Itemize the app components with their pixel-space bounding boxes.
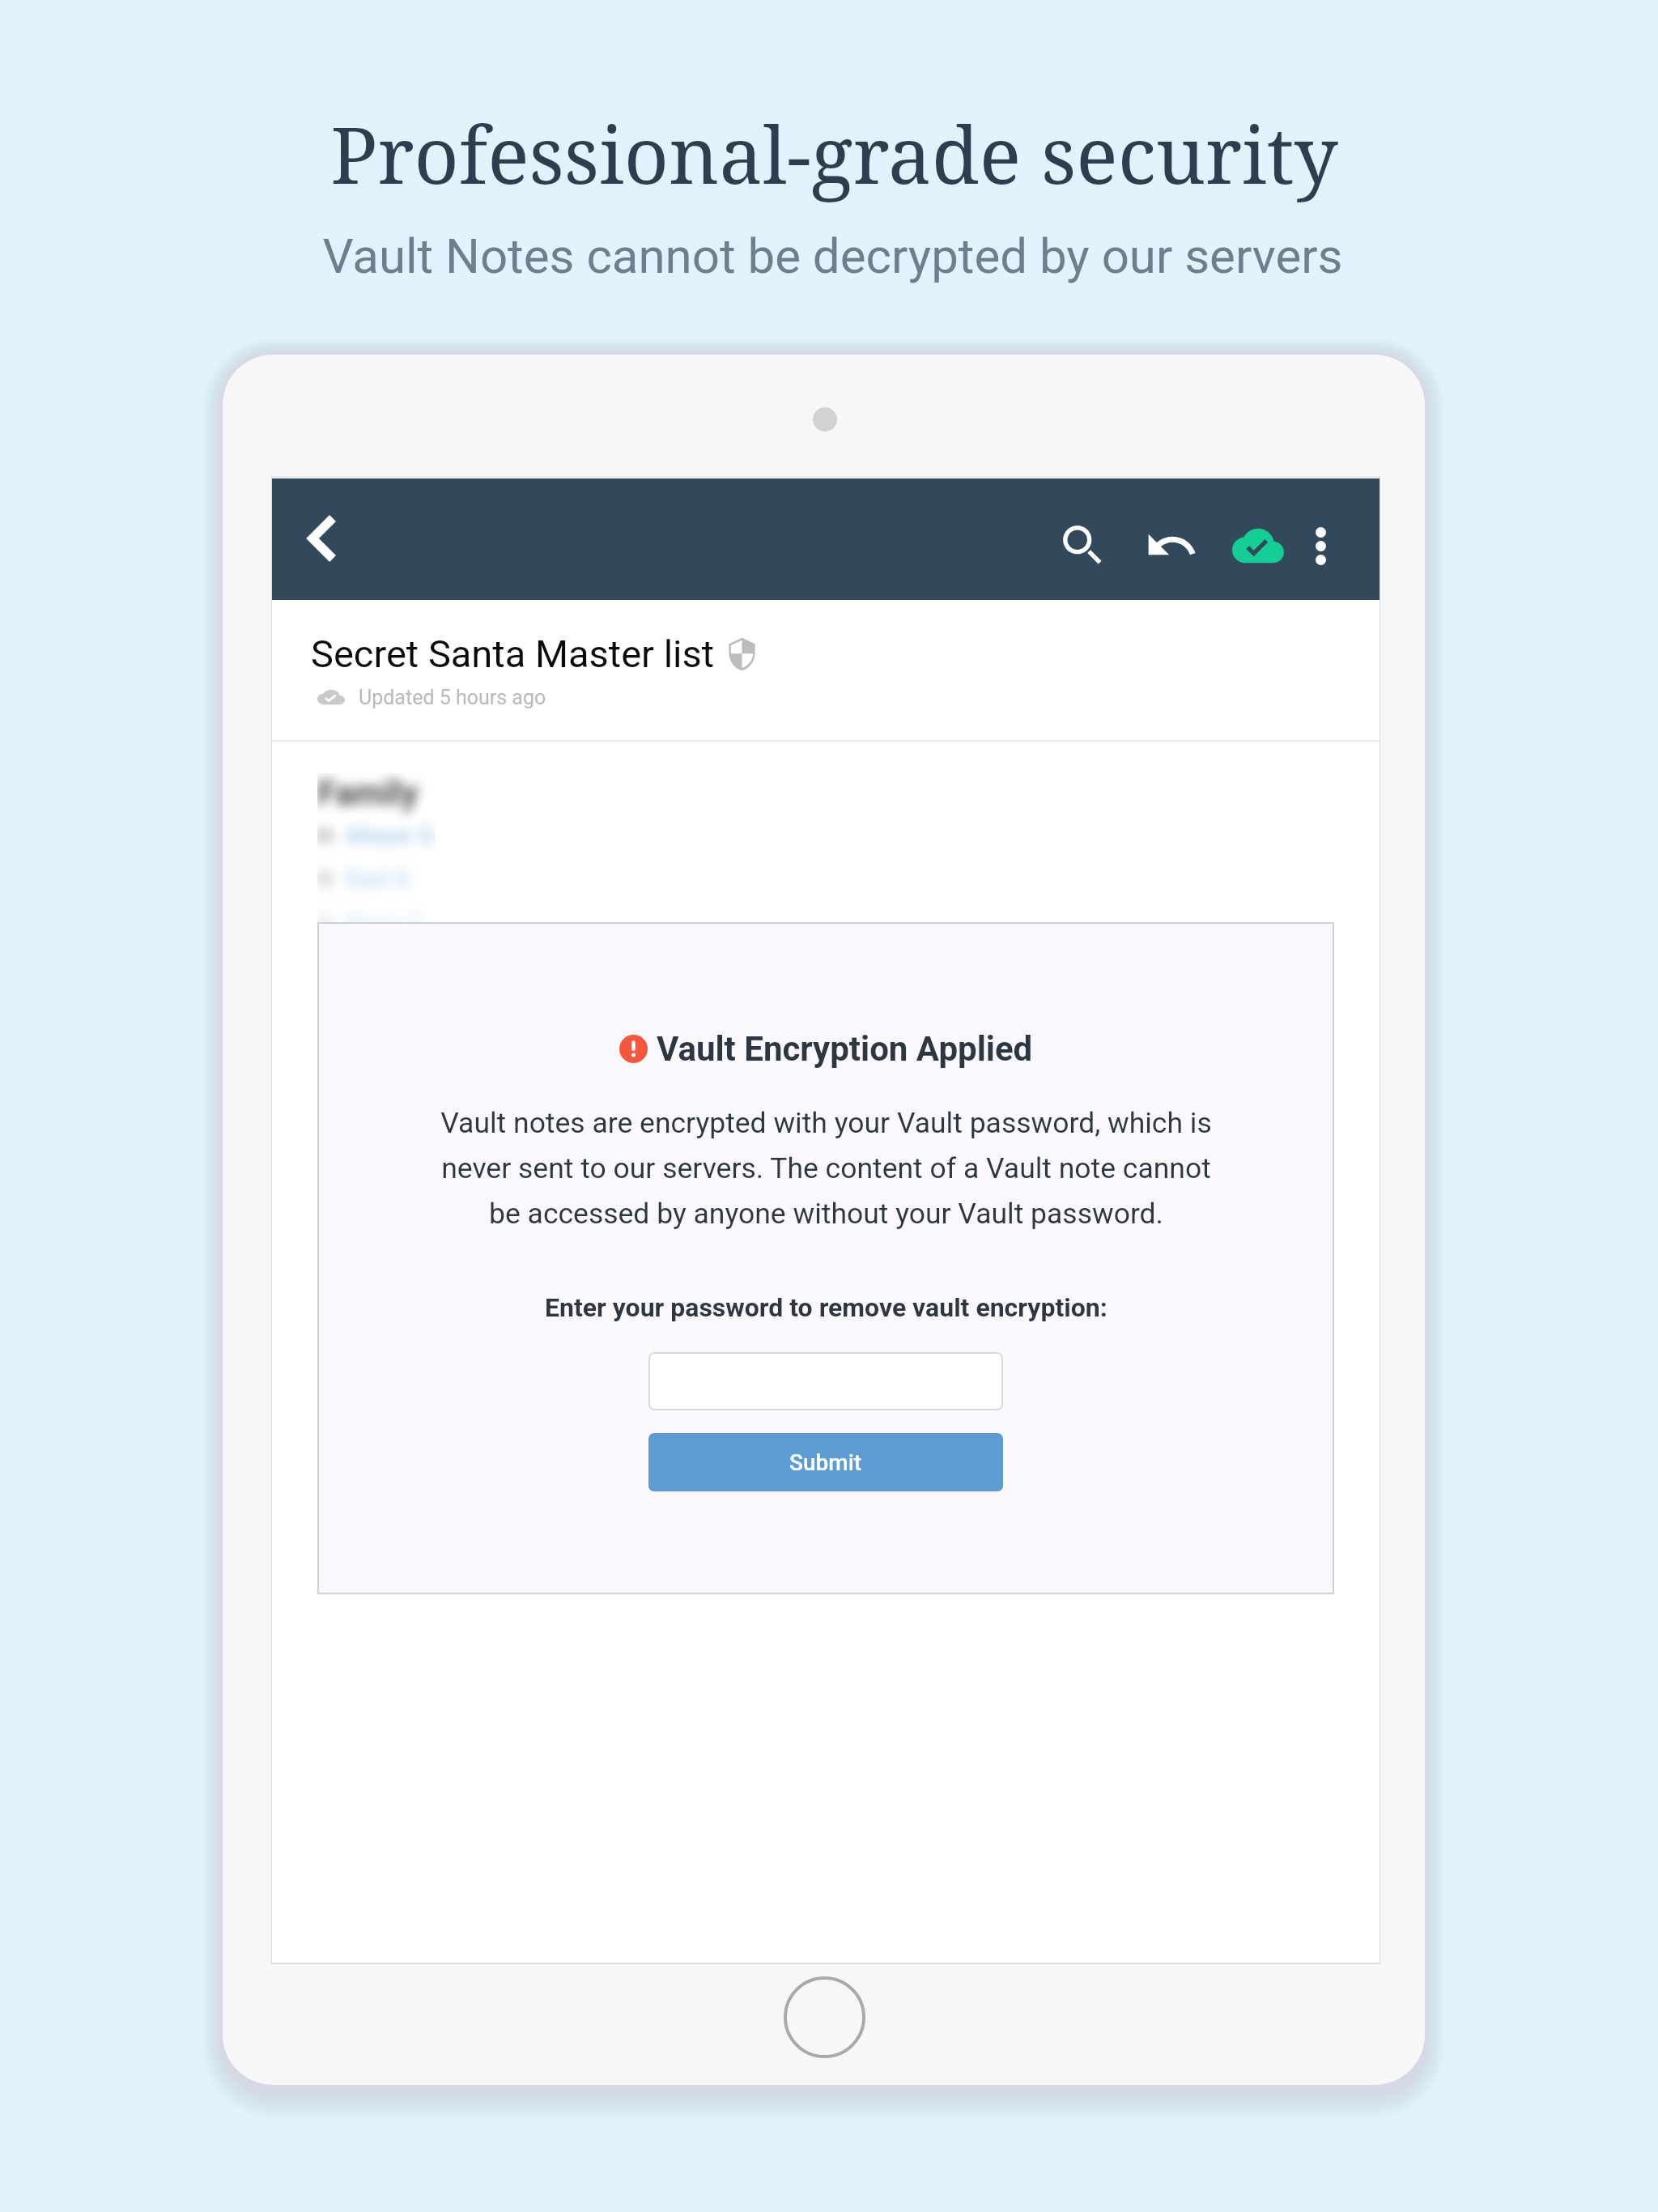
button[interactable]: Submit xyxy=(648,1433,1003,1491)
staticText: Submit xyxy=(789,1449,862,1476)
staticText: Family xyxy=(317,773,419,813)
staticText: Updated 5 hours ago xyxy=(359,686,546,709)
button[interactable]: Undo xyxy=(1120,479,1224,600)
staticText: Secret Santa Master list xyxy=(311,632,715,676)
staticText: Mum G xyxy=(345,907,423,935)
staticText: Dad G xyxy=(345,864,410,892)
staticText: Vault Encryption Applied xyxy=(657,1029,1033,1069)
button[interactable]: Password field xyxy=(648,1352,1003,1410)
button[interactable]: Back xyxy=(272,479,368,600)
staticText: Professional-grade security xyxy=(330,100,1338,206)
button[interactable]: Synced to cloud xyxy=(1211,479,1307,600)
button[interactable]: Search xyxy=(1030,479,1135,600)
staticText: Vault notes are encrypted with your Vaul… xyxy=(427,1106,1225,1231)
staticText: Vault Notes cannot be decrypted by our s… xyxy=(322,228,1343,284)
staticText: Alison G xyxy=(345,821,436,849)
button[interactable]: More options xyxy=(1282,479,1360,600)
staticText: Enter your password to remove vault encr… xyxy=(545,1292,1107,1323)
